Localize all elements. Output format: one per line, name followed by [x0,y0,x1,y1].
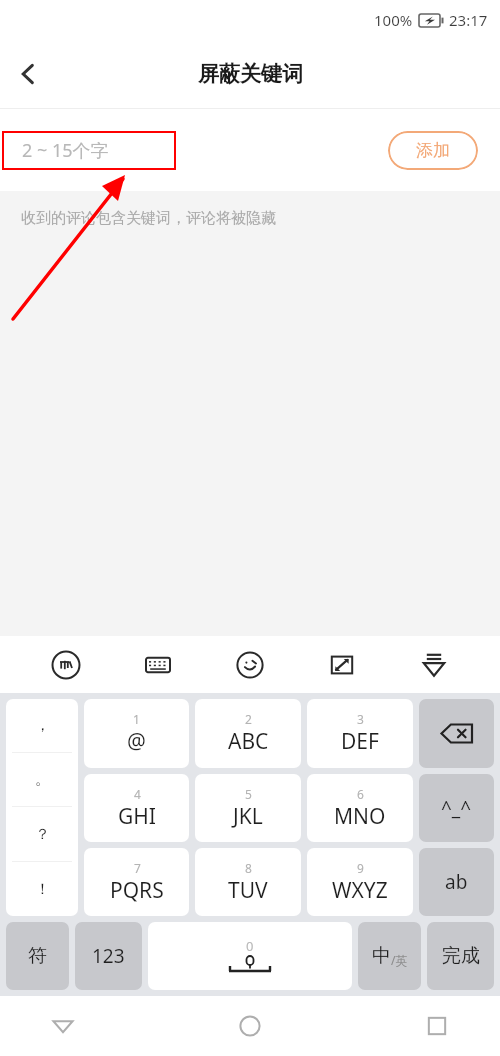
staticText: 7 [134,860,141,876]
button[interactable]: 中 [358,922,421,990]
button[interactable]: Input method [40,639,92,691]
button[interactable]: Home [223,999,277,1053]
staticText: ABC [228,727,269,756]
button[interactable]: 8 [195,848,301,916]
staticText: ， [35,716,50,735]
staticText: 中 [372,944,391,968]
button[interactable]: 7 [84,848,189,916]
staticText: 0 [246,937,254,955]
staticText: PQRS [110,876,164,905]
button[interactable]: ^_^ [419,774,494,842]
staticText: 添加 [416,140,450,161]
staticText: 4 [134,786,141,802]
staticText: 1 [133,711,140,727]
button[interactable]: ， [6,699,78,916]
staticText: GHI [118,802,156,831]
staticText: DEF [341,727,379,756]
staticText: 收到的评论包含关键词，评论将被隐藏 [21,209,276,228]
button[interactable]: 5 [195,774,301,842]
button[interactable]: 123 [75,922,142,990]
staticText: ^_^ [441,795,472,821]
button[interactable]: 6 [307,774,413,842]
button[interactable]: Keyboard [132,639,184,691]
staticText: /英 [391,952,408,968]
staticText: 完成 [442,944,480,968]
button[interactable]: ab [419,848,494,916]
staticText: TUV [228,876,268,905]
button[interactable]: 添加 [388,131,478,170]
staticText: 3 [357,711,364,727]
staticText: JKL [233,802,263,831]
staticText: 6 [357,786,364,802]
button[interactable]: Hide keyboard [408,639,460,691]
staticText: 100% [374,10,413,30]
staticText: ！ [35,880,50,899]
button[interactable]: Delete [419,699,494,768]
staticText: 5 [245,786,252,802]
staticText: 屏蔽关键词 [198,61,303,87]
staticText: @ [127,727,146,756]
staticText: 8 [245,860,252,876]
staticText: 。 [35,770,50,789]
button[interactable]: Emoji [224,639,276,691]
staticText: 9 [357,860,364,876]
button[interactable]: Back [0,46,56,102]
button[interactable]: 1 [84,699,189,768]
button[interactable]: 3 [307,699,413,768]
button[interactable]: 完成 [427,922,494,990]
button[interactable]: 9 [307,848,413,916]
staticText: WXYZ [332,876,388,905]
button[interactable]: Recent apps [410,999,464,1053]
staticText: 2 [245,711,252,727]
button[interactable]: Back [36,999,90,1053]
staticText: 23:17 [449,10,488,30]
button[interactable]: Shrink keyboard [316,639,368,691]
button[interactable]: 4 [84,774,189,842]
button[interactable]: Space and voice input [148,922,352,990]
button[interactable]: 符 [6,922,69,990]
staticText: 符 [28,944,47,968]
staticText: ？ [35,825,50,844]
button[interactable]: 2 ~ 15个字 [22,138,109,163]
button[interactable]: 2 [195,699,301,768]
staticText: ab [445,869,468,895]
staticText: MNO [334,802,386,831]
staticText: 123 [92,943,125,969]
